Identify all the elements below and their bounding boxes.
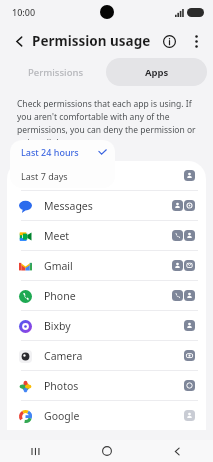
button[interactable]: Messages [7, 191, 206, 220]
button[interactable]: Meet [7, 221, 206, 250]
button[interactable]: Last 24 hours [10, 140, 115, 164]
staticText: Photos [44, 379, 184, 393]
button[interactable] [7, 161, 206, 190]
staticText [44, 169, 184, 183]
button[interactable]: Bixby [7, 311, 206, 340]
staticText: Check permissions that each app is using… [17, 98, 199, 149]
button[interactable]: Recents [0, 440, 71, 462]
button[interactable]: Google [7, 401, 206, 430]
staticText: Messages [44, 199, 172, 213]
staticText: Gmail [44, 259, 172, 273]
staticText: Permissions [28, 66, 84, 79]
staticText: Last 7 days [21, 170, 68, 182]
staticText: Last 24 hours [21, 146, 98, 158]
button[interactable]: Apps [106, 58, 207, 86]
staticText: Meet [44, 229, 172, 243]
button[interactable]: Photos [7, 371, 206, 400]
button[interactable]: More options [183, 28, 209, 54]
button[interactable]: Gmail [7, 251, 206, 280]
button[interactable]: Last 7 days [10, 164, 115, 188]
staticText: Permission usage [32, 32, 151, 50]
staticText: Apps [145, 66, 169, 79]
staticText: Phone [44, 289, 172, 303]
button[interactable]: Back [142, 440, 213, 462]
staticText: Camera [44, 349, 184, 363]
staticText: Bixby [44, 319, 184, 333]
staticText: Google [44, 409, 184, 423]
button[interactable]: Permissions [6, 58, 106, 86]
button[interactable]: Back [6, 28, 32, 54]
button[interactable]: Phone [7, 281, 206, 310]
button[interactable]: Information [155, 27, 183, 55]
button[interactable]: Home [71, 440, 142, 462]
staticText: 10:00 [12, 6, 36, 18]
button[interactable]: Camera [7, 341, 206, 370]
